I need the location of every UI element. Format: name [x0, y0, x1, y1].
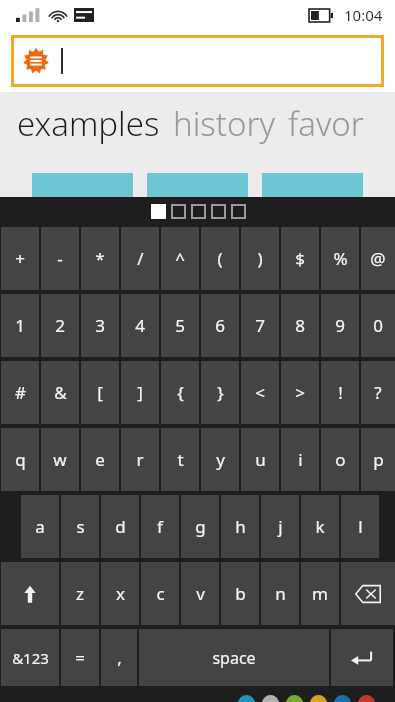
staticText: j — [278, 515, 283, 538]
button[interactable]: c — [141, 562, 179, 625]
button[interactable]: @ — [361, 227, 395, 290]
button[interactable]: 7 — [241, 294, 279, 357]
staticText: w — [53, 448, 67, 471]
button[interactable]: r — [121, 428, 159, 491]
button[interactable]: 6 — [201, 294, 239, 357]
button[interactable]: + — [1, 227, 39, 290]
staticText: t — [177, 448, 184, 471]
button[interactable]: , — [101, 629, 137, 686]
button[interactable]: x — [101, 562, 139, 625]
button[interactable]: i — [281, 428, 319, 491]
staticText: e — [95, 448, 105, 471]
staticText: ! — [338, 381, 343, 404]
staticText: i — [298, 448, 303, 471]
button[interactable]: g — [181, 495, 219, 558]
staticText: = — [75, 646, 85, 669]
staticText: k — [315, 515, 325, 538]
button[interactable]: e — [81, 428, 119, 491]
staticText: f — [157, 515, 163, 538]
button[interactable]: 0 — [361, 294, 395, 357]
staticText: 10:04 — [344, 5, 383, 25]
button[interactable]: q — [1, 428, 39, 491]
staticText: y — [216, 448, 225, 471]
button[interactable]: w — [41, 428, 79, 491]
button[interactable]: ( — [201, 227, 239, 290]
button[interactable]: n — [261, 562, 299, 625]
button[interactable]: y — [201, 428, 239, 491]
button[interactable]: space — [139, 629, 329, 686]
staticText: } — [217, 381, 224, 404]
button[interactable]: d — [101, 495, 139, 558]
button[interactable]: Enter — [331, 629, 393, 686]
button[interactable]: > — [281, 361, 319, 424]
button[interactable]: ) — [241, 227, 279, 290]
staticText: # — [15, 381, 26, 404]
button[interactable]: } — [201, 361, 239, 424]
button[interactable]: Backspace — [341, 562, 395, 625]
button[interactable]: 2 — [41, 294, 79, 357]
button[interactable]: / — [121, 227, 159, 290]
button[interactable]: 9 — [321, 294, 359, 357]
button[interactable]: ! — [321, 361, 359, 424]
button[interactable]: v — [181, 562, 219, 625]
button[interactable]: a — [21, 495, 59, 558]
button[interactable]: - — [41, 227, 79, 290]
button[interactable]: p — [361, 428, 395, 491]
staticText: 5 — [175, 314, 185, 337]
staticText: 3 — [95, 314, 105, 337]
staticText: favor — [288, 101, 364, 146]
button[interactable]: = — [61, 629, 99, 686]
button[interactable]: & — [41, 361, 79, 424]
button[interactable]: 8 — [281, 294, 319, 357]
button[interactable]: ] — [121, 361, 159, 424]
button[interactable]: examples — [17, 101, 160, 146]
button[interactable]: $ — [281, 227, 319, 290]
staticText: v — [196, 582, 205, 605]
button[interactable]: &123 — [1, 629, 59, 686]
staticText: 1 — [15, 314, 25, 337]
button[interactable]: t — [161, 428, 199, 491]
button[interactable]: u — [241, 428, 279, 491]
button[interactable]: ? — [361, 361, 395, 424]
button[interactable]: history — [173, 101, 275, 146]
staticText: space — [212, 647, 256, 669]
button[interactable]: 4 — [121, 294, 159, 357]
staticText: @ — [370, 247, 386, 270]
staticText: g — [195, 515, 206, 538]
button[interactable]: % — [321, 227, 359, 290]
staticText: ( — [217, 247, 223, 270]
staticText: examples — [17, 101, 160, 146]
staticText: < — [255, 381, 265, 404]
button[interactable]: Shift — [1, 562, 59, 625]
staticText: > — [295, 381, 305, 404]
button[interactable]: f — [141, 495, 179, 558]
button[interactable]: favor — [288, 101, 364, 146]
button[interactable]: o — [321, 428, 359, 491]
button[interactable]: * — [81, 227, 119, 290]
button[interactable]: l — [341, 495, 379, 558]
staticText: l — [358, 515, 363, 538]
button[interactable]: k — [301, 495, 339, 558]
button[interactable]: b — [221, 562, 259, 625]
button[interactable]: z — [61, 562, 99, 625]
button[interactable]: { — [161, 361, 199, 424]
staticText: b — [235, 582, 246, 605]
staticText: 0 — [373, 314, 383, 337]
button[interactable]: < — [241, 361, 279, 424]
staticText: z — [76, 582, 84, 605]
button[interactable]: # — [1, 361, 39, 424]
button[interactable]: s — [61, 495, 99, 558]
button[interactable]: m — [301, 562, 339, 625]
button[interactable]: ^ — [161, 227, 199, 290]
button[interactable]: 5 — [161, 294, 199, 357]
button[interactable]: 3 — [81, 294, 119, 357]
button[interactable]: j — [261, 495, 299, 558]
button[interactable]: 1 — [1, 294, 39, 357]
button[interactable]: h — [221, 495, 259, 558]
button[interactable] — [14, 38, 381, 84]
button[interactable]: [ — [81, 361, 119, 424]
staticText: n — [275, 582, 286, 605]
